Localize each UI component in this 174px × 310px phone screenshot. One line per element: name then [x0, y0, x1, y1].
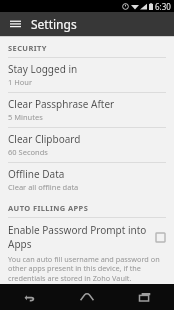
staticText: Enable Password Prompt into Apps: [8, 223, 154, 251]
staticText: Stay Logged in: [8, 62, 78, 76]
button[interactable]: Clear Passphrase After: [0, 93, 174, 128]
staticText: 1 Hour: [8, 77, 33, 87]
staticText: Clear Passphrase After: [8, 97, 115, 111]
button[interactable]: Home: [58, 284, 116, 310]
button[interactable]: Recent apps: [116, 284, 174, 310]
staticText: 5 Minutes: [8, 112, 43, 122]
button[interactable]: Offline Data: [0, 163, 174, 197]
button[interactable]: Back: [0, 284, 58, 310]
button[interactable]: Stay Logged in: [0, 58, 174, 93]
staticText: 6:30: [155, 1, 171, 12]
staticText: Clear Clipboard: [8, 132, 81, 146]
staticText: AUTO FILLING APPS: [8, 203, 89, 213]
staticText: Offline Data: [8, 167, 65, 181]
staticText: SECURITY: [8, 43, 47, 53]
staticText: You can auto fill username and password …: [8, 254, 162, 284]
staticText: 60 Seconds: [8, 147, 48, 157]
button[interactable]: Enable Password Prompt into Apps: [0, 218, 174, 284]
button[interactable]: Clear Clipboard: [0, 128, 174, 163]
button[interactable]: Open navigation drawer: [6, 15, 24, 33]
staticText: Settings: [31, 16, 77, 32]
staticText: Clear all offline data: [8, 182, 79, 192]
